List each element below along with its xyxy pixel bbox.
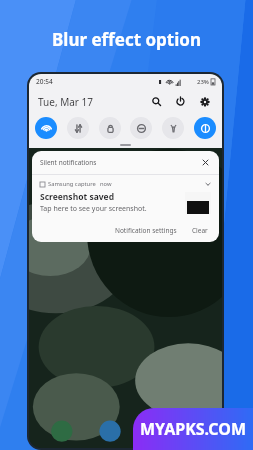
staticText: Samsung capture xyxy=(48,180,96,188)
button[interactable]: Quick setting toggle xyxy=(35,117,57,139)
button[interactable]: Search xyxy=(148,93,165,110)
button[interactable]: Clear xyxy=(189,224,211,237)
button[interactable]: Quick setting toggle xyxy=(194,117,216,139)
staticText: Silent notifications xyxy=(40,158,97,167)
button[interactable]: Samsung capture xyxy=(32,175,219,219)
staticText: Blur effect option xyxy=(0,28,253,51)
staticText: now xyxy=(100,180,112,188)
button[interactable]: MYAPKS.COM xyxy=(133,408,253,450)
staticText: Clear xyxy=(192,226,208,235)
button[interactable]: Notification settings xyxy=(112,224,180,237)
staticText: 23% xyxy=(197,78,209,86)
button[interactable]: Quick setting toggle xyxy=(130,117,152,139)
button[interactable]: Quick setting toggle xyxy=(67,117,89,139)
staticText: Screenshot saved xyxy=(40,191,115,203)
staticText: Tap here to see your screenshot. xyxy=(40,204,147,214)
staticText: Tue, Mar 17 xyxy=(38,95,94,109)
button[interactable]: Quick setting toggle xyxy=(99,117,121,139)
staticText: MYAPKS.COM xyxy=(140,418,246,440)
button[interactable]: Quick setting toggle xyxy=(162,117,184,139)
staticText: 20:54 xyxy=(36,77,53,86)
button[interactable]: Silent notifications xyxy=(32,151,219,174)
button[interactable]: Settings xyxy=(196,93,213,110)
button[interactable]: Power xyxy=(172,93,189,110)
button[interactable]: Dismiss xyxy=(200,157,211,168)
staticText: Notification settings xyxy=(115,226,177,235)
